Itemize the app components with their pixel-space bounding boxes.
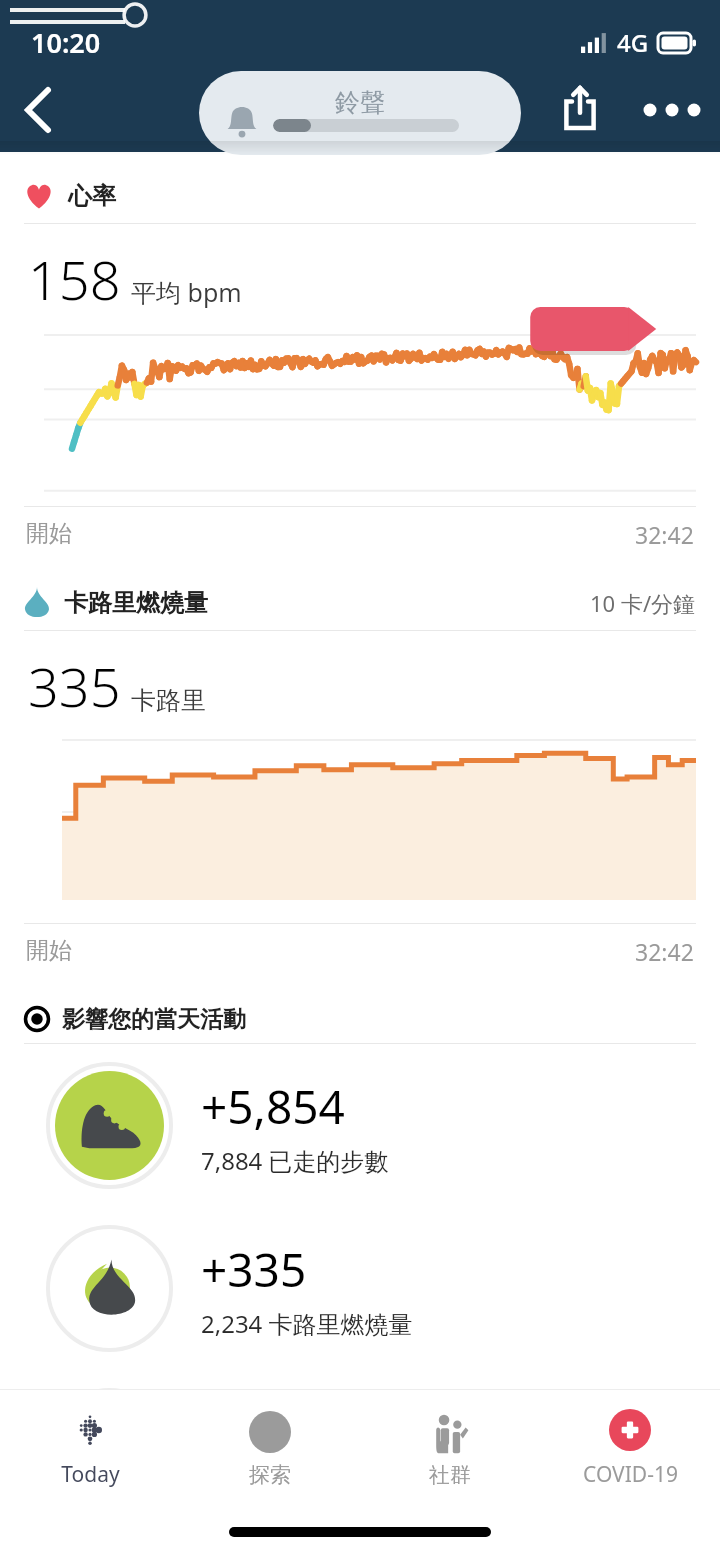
button[interactable]: 社群 (360, 1390, 540, 1506)
staticText: 2,234 卡路里燃燒量 (201, 1307, 413, 1340)
staticText: 10:20 (31, 24, 101, 61)
button[interactable]: +60 (0, 1370, 720, 1533)
staticText: 探索 (249, 1462, 291, 1488)
button[interactable]: COVID-19 (540, 1390, 720, 1506)
staticText: 32:42 (635, 936, 694, 967)
staticText: 開始 (26, 936, 72, 965)
button[interactable]: Back (6, 78, 70, 142)
staticText: 鈴聲 (335, 87, 385, 118)
staticText: +60 (201, 1420, 280, 1483)
button[interactable]: +335 (0, 1207, 720, 1370)
staticText: +5,854 (201, 1075, 345, 1138)
staticText: 32:42 (635, 519, 694, 550)
staticText: 社群 (429, 1462, 471, 1488)
button[interactable]: More options (640, 78, 704, 142)
staticText: 卡路里 (131, 685, 206, 716)
staticText: 10 卡/分鐘 (590, 588, 696, 618)
button[interactable]: +5,854 (0, 1044, 720, 1207)
staticText: 卡路里燃燒量 (64, 588, 208, 618)
button[interactable]: Today (0, 1390, 180, 1506)
staticText: Today (61, 1460, 120, 1489)
staticText: 開始 (26, 519, 72, 548)
staticText: 335 (28, 649, 121, 723)
staticText: 心率 (68, 181, 116, 211)
staticText: 7,884 已走的步數 (201, 1144, 389, 1177)
button[interactable]: Ringer volume (199, 71, 521, 155)
staticText: +335 (201, 1238, 307, 1301)
staticText: 4G (617, 26, 649, 59)
button[interactable]: Share (550, 78, 610, 138)
staticText: COVID-19 (583, 1460, 678, 1489)
button[interactable]: 探索 (180, 1390, 360, 1506)
staticText: 影響您的當天活動 (62, 1005, 246, 1034)
staticText: 平均 bpm (131, 275, 242, 309)
staticText: 158 (28, 242, 121, 316)
